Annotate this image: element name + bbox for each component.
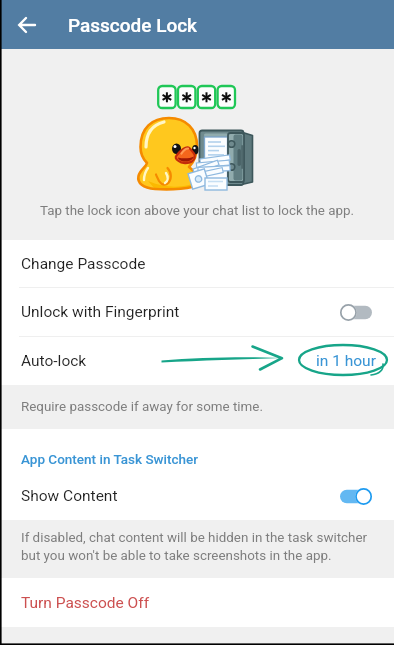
button[interactable]: Back	[0, 0, 54, 49]
button[interactable]: Auto-lock	[0, 337, 394, 385]
staticText: in 1 hour	[316, 352, 376, 370]
staticText: but you won't be able to take screenshot…	[21, 548, 332, 564]
staticText: Show Content	[21, 487, 339, 505]
button[interactable]: Unlock with Fingerprint	[0, 288, 394, 336]
staticText: Unlock with Fingerprint	[21, 303, 339, 321]
button[interactable]: Show Content	[0, 472, 394, 520]
staticText: App Content in Task Switcher	[21, 451, 199, 467]
staticText: Turn Passcode Off	[21, 594, 150, 612]
button[interactable]: Change Passcode	[0, 240, 394, 287]
staticText: Tap the lock icon above your chat list t…	[0, 203, 394, 219]
staticText: Auto-lock	[21, 352, 316, 370]
staticText: Require passcode if away for some time.	[21, 399, 263, 415]
staticText: If disabled, chat content will be hidden…	[21, 530, 368, 546]
staticText: Change Passcode	[21, 255, 146, 273]
staticText: Passcode Lock	[68, 14, 197, 36]
button[interactable]: Turn Passcode Off	[0, 578, 394, 627]
